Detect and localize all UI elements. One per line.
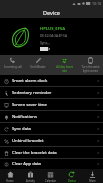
staticText: Sync data (12, 126, 96, 132)
button[interactable]: Clear the bracelet data (0, 147, 103, 158)
button[interactable]: Clear App data (0, 159, 103, 169)
staticText: 10:10 (92, 1, 101, 6)
staticText: Sedentary reminder (12, 90, 96, 96)
staticText: All-day heart rate (56, 65, 73, 72)
staticText: Smart alarm clock (12, 78, 96, 84)
staticText: Clear App data (12, 161, 96, 167)
staticText: DE:E2:0A:3A:EF:5A (40, 34, 67, 38)
button[interactable]: Incoming call (0, 55, 25, 75)
staticText: Device (43, 9, 60, 16)
button[interactable]: Screen saver time (0, 99, 103, 110)
staticText: Screen saver time (12, 102, 96, 108)
button[interactable]: Smart alarm clock (0, 75, 103, 86)
button[interactable]: Sync... (40, 40, 51, 45)
button[interactable]: All-day heart rate (51, 55, 77, 75)
staticText: Home (6, 179, 14, 183)
staticText: Incoming call (4, 65, 22, 69)
staticText: More (89, 179, 96, 183)
staticText: Calendar (45, 179, 56, 183)
staticText: Unbind bracelet (12, 138, 96, 144)
staticText: Unit Master (30, 65, 46, 69)
button[interactable]: Unbind bracelet (0, 135, 103, 146)
button[interactable]: Activity (20, 169, 40, 183)
button[interactable]: Sedentary reminder (0, 87, 103, 98)
button[interactable]: Turn the wrist light screen (77, 55, 103, 75)
staticText: Device (68, 179, 76, 183)
button[interactable]: Notifications (0, 111, 103, 122)
button[interactable]: More (82, 169, 103, 183)
button[interactable]: Unit Master (25, 55, 51, 75)
staticText: Notifications (12, 114, 96, 120)
staticText: HPLUS_EF5A (40, 26, 66, 32)
button[interactable]: Sync data (0, 123, 103, 134)
button[interactable]: Device (61, 169, 82, 183)
button[interactable]: Home (0, 169, 20, 183)
button[interactable]: Calendar (40, 169, 61, 183)
staticText: Clear the bracelet data (12, 150, 96, 156)
staticText: Activity (26, 179, 35, 183)
staticText: Turn the wrist light screen (81, 65, 100, 72)
